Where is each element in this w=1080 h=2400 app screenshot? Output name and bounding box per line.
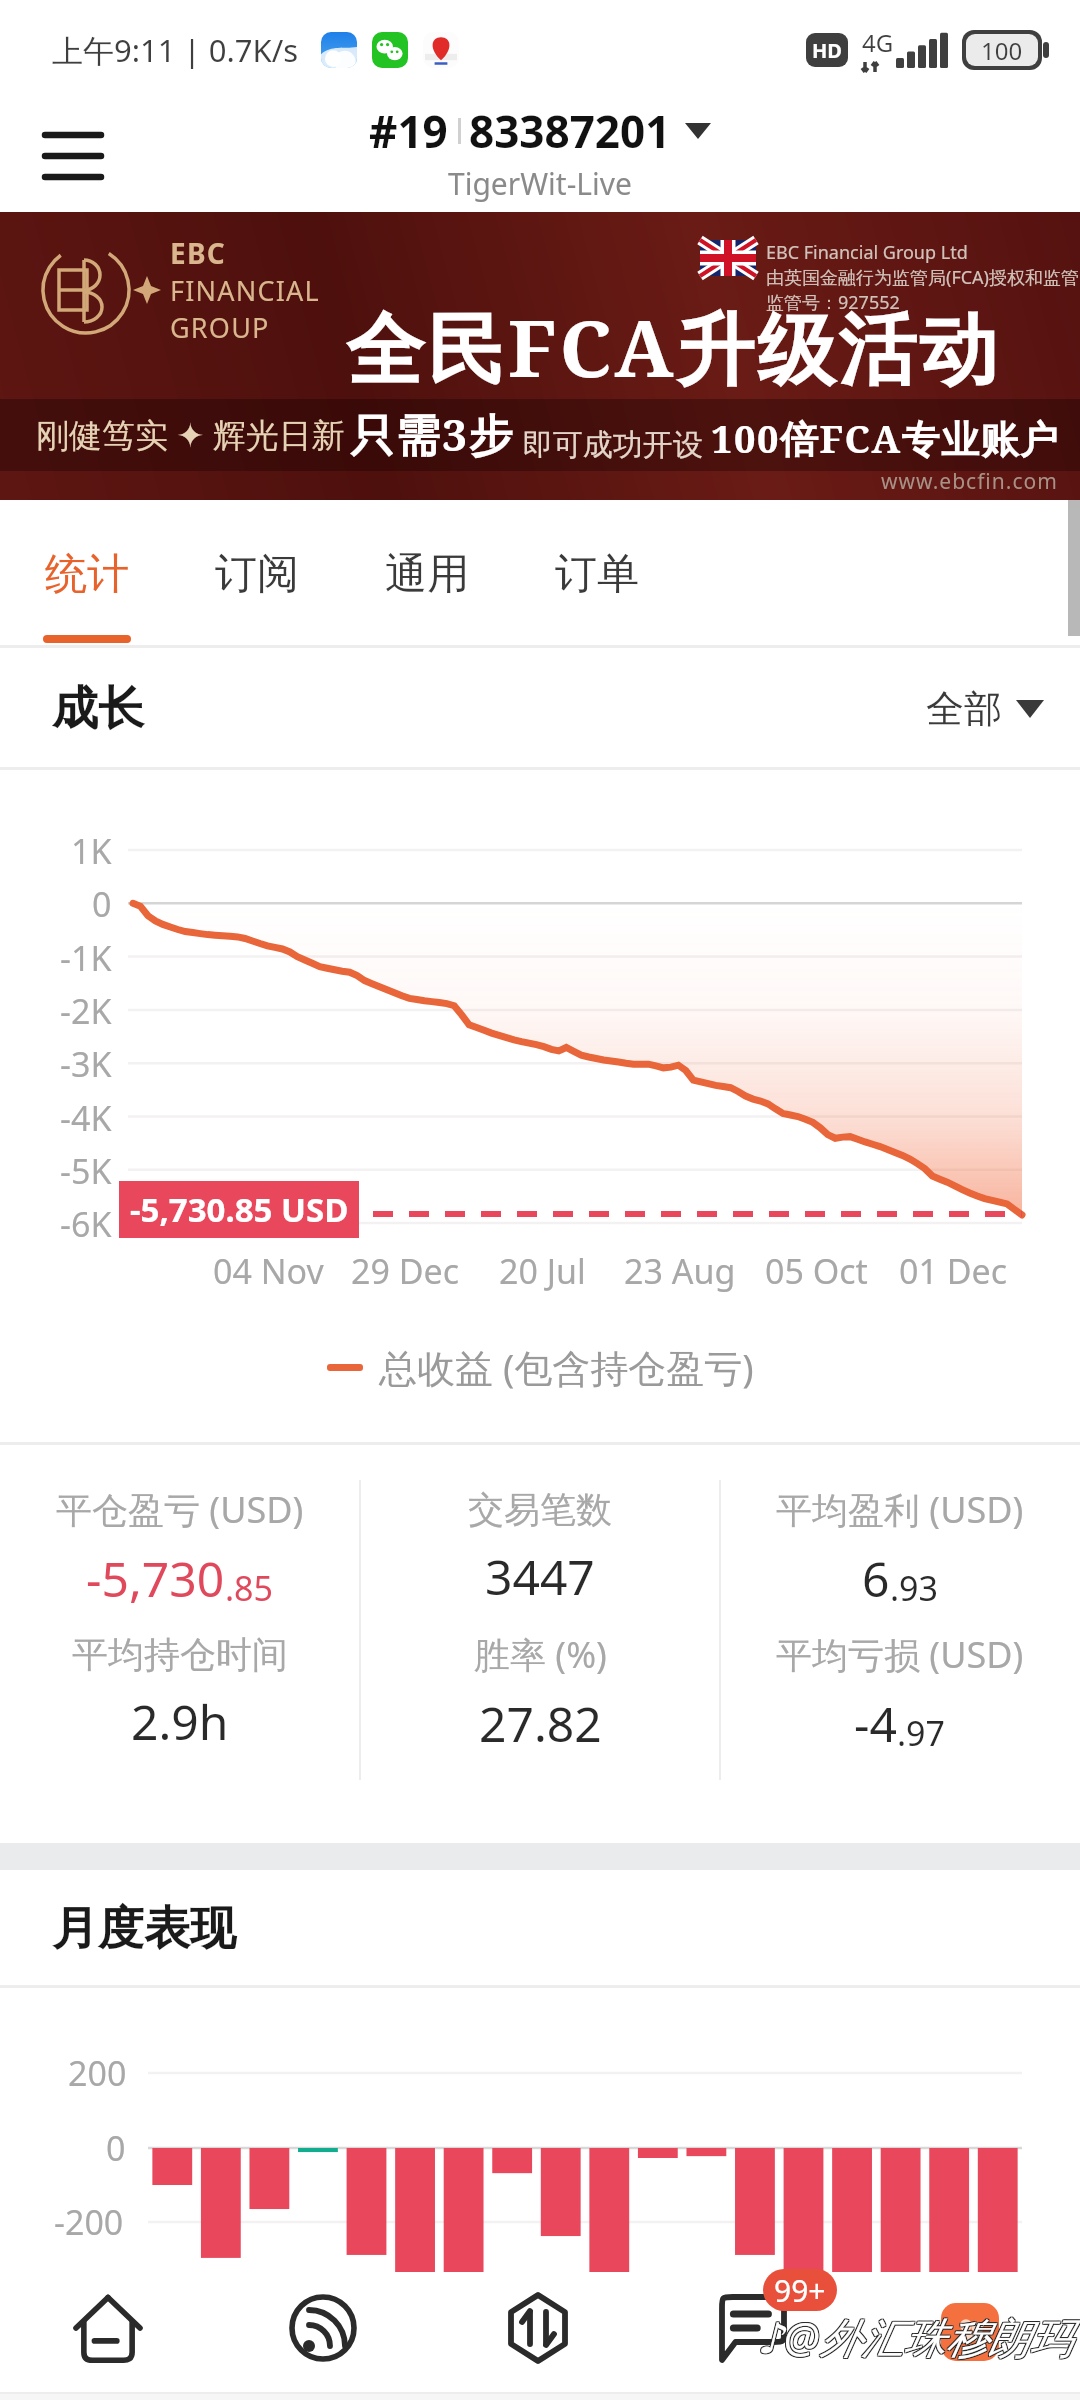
- staticText: 胜率 (%): [474, 1630, 607, 1679]
- staticText: 订单: [555, 548, 639, 601]
- button[interactable]: EBC: [0, 212, 1080, 500]
- staticText: 01 Dec: [899, 1248, 1008, 1294]
- staticText: .85: [225, 1565, 274, 1611]
- button[interactable]: 订阅: [172, 500, 342, 648]
- staticText: ♪@外汇珠穆朗玛: [758, 2308, 1073, 2365]
- staticText: 总收益 (包含持仓盈亏): [379, 1341, 754, 1393]
- button[interactable]: 通用: [342, 500, 512, 648]
- staticText: -6K: [60, 1201, 112, 1247]
- button[interactable]: 平均盈利 (USD): [720, 1475, 1080, 1620]
- staticText: 月度表现: [52, 1900, 236, 1958]
- staticText: 27.82: [479, 1691, 602, 1756]
- staticText: ♪@外汇珠穆朗玛: [756, 2307, 1071, 2364]
- staticText: ♪@外汇珠穆朗玛: [757, 2308, 1072, 2365]
- staticText: 平均盈利 (USD): [776, 1485, 1024, 1534]
- staticText: HD: [812, 37, 842, 64]
- staticText: EBC Financial Group Ltd: [766, 240, 968, 265]
- staticText: 200: [68, 2050, 127, 2096]
- staticText: -2K: [60, 988, 112, 1034]
- button[interactable]: Home: [0, 2264, 215, 2392]
- staticText: 监管号：927552: [766, 290, 900, 315]
- staticText: 4G: [862, 26, 894, 59]
- staticText: ♪@外汇珠穆朗玛: [756, 2308, 1071, 2365]
- staticText: 平均持仓时间: [72, 1632, 288, 1677]
- staticText: 全民FCA升级活动: [346, 294, 1001, 401]
- staticText: -4: [854, 1691, 897, 1756]
- staticText: 只需3步: [350, 404, 515, 464]
- staticText: ♪@外汇珠穆朗玛: [758, 2307, 1073, 2364]
- staticText: .93: [890, 1565, 939, 1611]
- staticText: 即可成功开设: [515, 423, 711, 464]
- staticText: 2.9h: [131, 1689, 229, 1754]
- button[interactable]: Signals: [215, 2264, 430, 2392]
- staticText: 100: [981, 34, 1023, 66]
- staticText: EBC: [170, 234, 226, 272]
- staticText: 6: [862, 1546, 890, 1611]
- button[interactable]: 全部: [926, 685, 1044, 733]
- staticText: ♪@外汇珠穆朗玛: [757, 2309, 1072, 2366]
- staticText: TigerWit-Live: [448, 163, 632, 204]
- button[interactable]: 订单: [512, 500, 682, 648]
- staticText: 0: [92, 881, 112, 927]
- staticText: 交易笔数: [468, 1487, 612, 1532]
- staticText: 100倍FCA专业账户: [711, 412, 1060, 464]
- staticText: ♪@外汇珠穆朗玛: [758, 2309, 1073, 2366]
- staticText: 29 Dec: [351, 1248, 460, 1294]
- button[interactable]: 平均亏损 (USD): [720, 1620, 1080, 1765]
- staticText: -200: [54, 2199, 124, 2245]
- staticText: 05 Oct: [765, 1248, 868, 1294]
- staticText: FINANCIAL: [170, 272, 320, 309]
- staticText: -5,730: [86, 1546, 225, 1611]
- staticText: 23 Aug: [624, 1248, 736, 1294]
- staticText: -5,730.85 USD: [130, 1187, 349, 1232]
- button[interactable]: 胜率 (%): [360, 1620, 720, 1765]
- staticText: 3447: [485, 1544, 595, 1609]
- staticText: 83387201: [469, 101, 671, 161]
- staticText: 由英国金融行为监管局(FCA)授权和监管: [766, 265, 1080, 290]
- staticText: 订阅: [215, 548, 299, 601]
- button[interactable]: Messages: [693, 2268, 813, 2388]
- staticText: -3K: [60, 1041, 112, 1087]
- staticText: 20 Jul: [499, 1248, 586, 1294]
- button[interactable]: 平均持仓时间: [0, 1620, 360, 1765]
- staticText: ♪@外汇珠穆朗玛: [756, 2309, 1071, 2366]
- staticText: 平仓盈亏 (USD): [56, 1485, 304, 1534]
- staticText: .97: [897, 1710, 946, 1756]
- staticText: -5K: [60, 1148, 112, 1194]
- staticText: #19: [369, 101, 448, 161]
- staticText: ♪@外汇珠穆朗玛: [757, 2307, 1072, 2364]
- staticText: 99+: [774, 2270, 826, 2311]
- staticText: 1K: [71, 828, 112, 874]
- staticText: 成长: [52, 680, 144, 738]
- button[interactable]: 统计: [2, 500, 172, 648]
- staticText: www.ebcfin.com: [881, 467, 1058, 496]
- staticText: 通用: [385, 548, 469, 601]
- button[interactable]: 交易笔数: [360, 1475, 720, 1620]
- button[interactable]: Menu: [28, 111, 118, 201]
- staticText: 平均亏损 (USD): [776, 1630, 1024, 1679]
- staticText: -4K: [60, 1095, 112, 1141]
- staticText: -1K: [60, 935, 112, 981]
- staticText: 04 Nov: [213, 1248, 324, 1294]
- button[interactable]: Trade: [430, 2264, 645, 2392]
- button[interactable]: 平仓盈亏 (USD): [0, 1475, 360, 1620]
- staticText: 上午9:11 | 0.7K/s: [52, 29, 299, 71]
- staticText: 刚健笃实 ✦ 辉光日新: [36, 412, 345, 457]
- staticText: 全部: [926, 685, 1002, 733]
- staticText: 0: [106, 2125, 126, 2171]
- staticText: 统计: [45, 548, 129, 601]
- staticText: GROUP: [170, 309, 270, 346]
